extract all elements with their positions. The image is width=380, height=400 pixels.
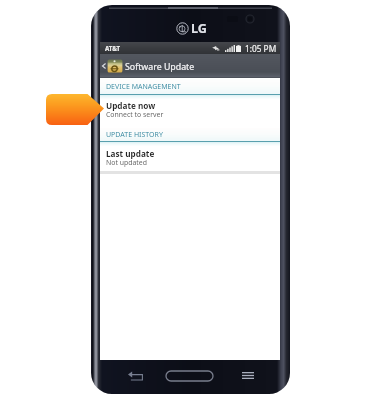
button[interactable]: Back	[121, 365, 150, 386]
staticText: 1:05 PM	[245, 43, 277, 54]
staticText: Software Update	[125, 61, 195, 73]
staticText: Update now	[106, 100, 156, 111]
staticText: DEVICE MANAGEMENT	[106, 82, 181, 92]
staticText: UPDATE HISTORY	[106, 130, 163, 140]
button[interactable]: Menu	[235, 365, 260, 386]
button[interactable]: Update now	[100, 95, 280, 128]
other: Pointer	[46, 94, 104, 125]
button[interactable]: Software Update	[100, 54, 280, 78]
button[interactable]: Last update	[100, 142, 280, 171]
staticText: Not updated	[106, 158, 147, 167]
staticText: LG	[191, 20, 207, 37]
staticText: AT&T	[105, 44, 121, 52]
staticText: Last update	[106, 148, 155, 159]
staticText: Connect to server	[106, 110, 164, 119]
button[interactable]: Home	[166, 371, 213, 381]
